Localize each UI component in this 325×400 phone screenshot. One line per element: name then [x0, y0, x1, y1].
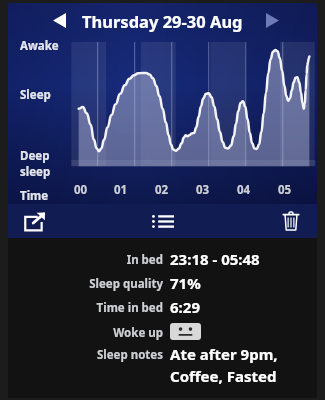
- staticText: sleep: [20, 164, 51, 180]
- button[interactable]: List: [143, 205, 183, 237]
- staticText: Thursday 29-30 Aug: [82, 10, 243, 32]
- staticText: Sleep quality: [89, 276, 163, 292]
- staticText: Sleep notes: [96, 347, 163, 363]
- button[interactable]: Previous day: [44, 6, 74, 34]
- staticText: 03: [196, 182, 210, 198]
- staticText: 23:18 - 05:48: [170, 249, 260, 269]
- staticText: Deep: [20, 148, 50, 164]
- staticText: Woke up: [113, 325, 163, 341]
- staticText: 02: [155, 182, 169, 198]
- button[interactable]: Share: [14, 205, 54, 237]
- staticText: Coffee, Fasted: [170, 366, 277, 386]
- staticText: Time in bed: [96, 300, 163, 316]
- staticText: Awake: [20, 38, 59, 54]
- button[interactable]: Woke up neutral: [170, 323, 201, 340]
- staticText: 01: [114, 182, 128, 198]
- button[interactable]: Next day: [257, 6, 287, 34]
- staticText: 71%: [170, 273, 201, 293]
- staticText: Ate after 9pm,: [170, 344, 278, 364]
- staticText: 05: [278, 182, 292, 198]
- staticText: In bed: [126, 252, 163, 268]
- staticText: 00: [74, 182, 88, 198]
- button[interactable]: Delete: [271, 205, 311, 237]
- staticText: 6:29: [170, 297, 200, 317]
- staticText: Sleep: [20, 87, 51, 103]
- staticText: Time: [20, 188, 49, 204]
- staticText: 04: [237, 182, 251, 198]
